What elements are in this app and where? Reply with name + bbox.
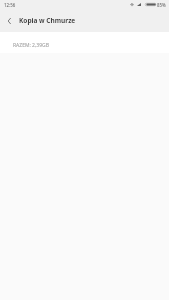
- staticText: RAZEM: 2,39GB: [13, 42, 49, 49]
- staticText: 12:56: [4, 2, 16, 8]
- button[interactable]: Back: [0, 10, 19, 31]
- staticText: Kopia w Chmurze: [19, 16, 76, 25]
- staticText: 85%: [157, 2, 166, 8]
